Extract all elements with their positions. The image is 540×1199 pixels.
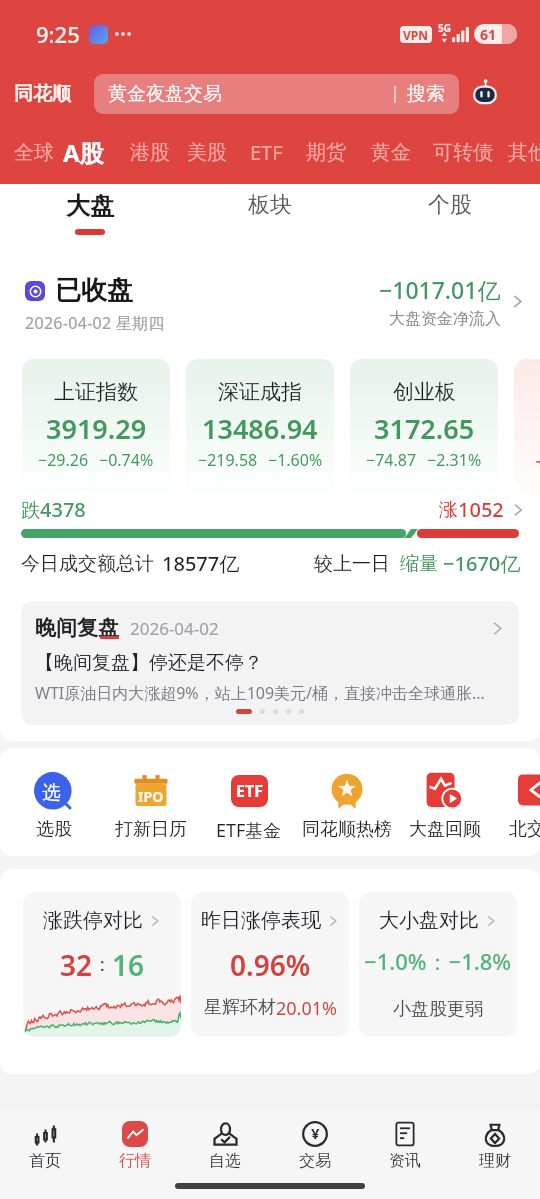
button[interactable]: 北交所 xyxy=(487,772,540,841)
staticText: + xyxy=(535,443,540,478)
staticText: 已收盘 xyxy=(55,274,133,307)
button[interactable]: 大小盘对比 xyxy=(359,892,517,1037)
staticText: 美股 xyxy=(187,140,227,165)
button[interactable]: 创业板 xyxy=(350,359,498,495)
button[interactable]: 深证成指 xyxy=(186,359,334,495)
staticText: 同花顺热榜 xyxy=(302,818,392,841)
staticText: 缩量 xyxy=(400,552,438,576)
staticText: 3172.65 xyxy=(374,410,475,447)
staticText: 晚间复盘 xyxy=(35,615,119,641)
staticText: 深证成指 xyxy=(218,379,302,405)
button[interactable]: 首页 xyxy=(0,1121,90,1179)
staticText: 18577亿 xyxy=(162,550,240,577)
staticText: 16 xyxy=(112,946,145,984)
button[interactable]: 行情 xyxy=(90,1121,180,1179)
staticText: VPN xyxy=(403,27,429,43)
staticText: 个股 xyxy=(428,191,472,219)
button[interactable]: 昨日涨停表现 xyxy=(191,892,349,1037)
button[interactable]: ¥ xyxy=(270,1121,360,1179)
button[interactable]: 同花顺热榜 xyxy=(298,772,396,841)
staticText: 2026-04-02 xyxy=(130,617,219,640)
staticText: 交易 xyxy=(299,1151,331,1171)
staticText: 13486.94 xyxy=(202,410,318,447)
staticText: 昨日涨停表现 xyxy=(201,908,321,933)
staticText: 资讯 xyxy=(389,1151,421,1171)
staticText: 5G xyxy=(438,21,451,35)
staticText: 北交所 xyxy=(509,818,540,841)
button[interactable]: 资讯 xyxy=(360,1121,450,1179)
staticText: 大盘资金净流入 xyxy=(389,309,501,329)
staticText: 创业板 xyxy=(393,379,456,405)
staticText: 可转债 xyxy=(433,140,493,165)
staticText: 大盘 xyxy=(66,191,114,221)
button[interactable]: ETF xyxy=(200,772,298,843)
staticText: −2.31% xyxy=(427,449,482,471)
staticText: 搜索 xyxy=(407,82,445,106)
staticText: 港股 xyxy=(130,140,170,165)
button[interactable]: 理财 xyxy=(450,1121,540,1179)
staticText: 0.96% xyxy=(230,946,311,984)
staticText: 2026-04-02 星期四 xyxy=(25,312,165,334)
staticText: 【晚间复盘】停还是不停？ xyxy=(35,651,263,675)
staticText: −1017.01亿 xyxy=(379,274,501,305)
staticText: 选 xyxy=(42,781,61,805)
staticText: 理财 xyxy=(479,1151,511,1171)
staticText: 跌 xyxy=(21,499,40,523)
staticText: WTI原油日内大涨超9%，站上109美元/桶，直接冲击全球通胀… xyxy=(35,682,485,704)
button[interactable]: 自选 xyxy=(180,1121,270,1179)
button[interactable]: 板块 xyxy=(180,184,360,246)
button[interactable]: 可转债 xyxy=(427,128,499,176)
button[interactable]: 上证指数 xyxy=(22,359,170,495)
staticText: ETF基金 xyxy=(216,818,282,843)
staticText: 期货 xyxy=(306,140,346,165)
button[interactable]: 涨跌停对比 xyxy=(23,892,181,1037)
button[interactable]: IPO xyxy=(102,772,200,841)
staticText: 4378 xyxy=(40,496,86,523)
staticText: 其他 xyxy=(508,140,540,165)
staticText: ETF xyxy=(250,139,283,166)
staticText: 61 xyxy=(480,25,497,44)
staticText: 今日成交额总计 xyxy=(21,552,154,576)
button[interactable]: 黄金夜盘交易 xyxy=(94,74,459,114)
button[interactable]: AI assistant xyxy=(470,79,500,109)
staticText: −1.60% xyxy=(268,449,323,471)
button[interactable]: A股 xyxy=(57,128,110,176)
staticText: 3919.29 xyxy=(46,410,147,447)
staticText: 黄金夜盘交易 xyxy=(108,82,222,106)
button[interactable]: 选 xyxy=(5,772,103,841)
staticText: 打新日历 xyxy=(115,818,187,841)
staticText: −0.74% xyxy=(99,449,154,471)
staticText: 自选 xyxy=(209,1151,241,1171)
staticText: −74.87 xyxy=(366,449,417,471)
staticText: ETF xyxy=(236,780,263,802)
staticText: 涨跌停对比 xyxy=(43,908,143,933)
staticText: 板块 xyxy=(248,191,292,219)
staticText: 1052 xyxy=(458,496,504,523)
button[interactable]: 晚间复盘 xyxy=(21,601,519,725)
button[interactable]: 港股 xyxy=(124,128,176,176)
button[interactable]: 黄金 xyxy=(365,128,417,176)
staticText: 首页 xyxy=(29,1151,61,1171)
staticText: 黄金 xyxy=(371,140,411,165)
staticText: 全球 xyxy=(14,140,54,165)
button[interactable]: 全球 xyxy=(8,128,60,176)
button[interactable]: 期货 xyxy=(300,128,352,176)
staticText: −219.58 xyxy=(198,449,258,471)
staticText: IPO xyxy=(138,787,164,806)
button[interactable]: 美股 xyxy=(181,128,233,176)
staticText: 选股 xyxy=(36,818,72,841)
button[interactable]: 大盘 xyxy=(0,184,180,246)
staticText: 大盘回顾 xyxy=(409,818,481,841)
button[interactable]: 大盘回顾 xyxy=(396,772,494,841)
staticText: 涨 xyxy=(439,498,458,522)
staticText: 小盘股更弱 xyxy=(393,998,483,1021)
staticText: 星辉环材 xyxy=(204,996,276,1019)
staticText: A股 xyxy=(63,136,104,169)
staticText: 同花顺 xyxy=(14,82,71,106)
button[interactable]: ETF xyxy=(244,128,289,176)
staticText: 大小盘对比 xyxy=(379,908,479,933)
staticText: 32 xyxy=(60,946,93,984)
button[interactable]: 个股 xyxy=(360,184,540,246)
staticText: 行情 xyxy=(119,1151,151,1171)
button[interactable]: 其他 xyxy=(502,128,540,176)
